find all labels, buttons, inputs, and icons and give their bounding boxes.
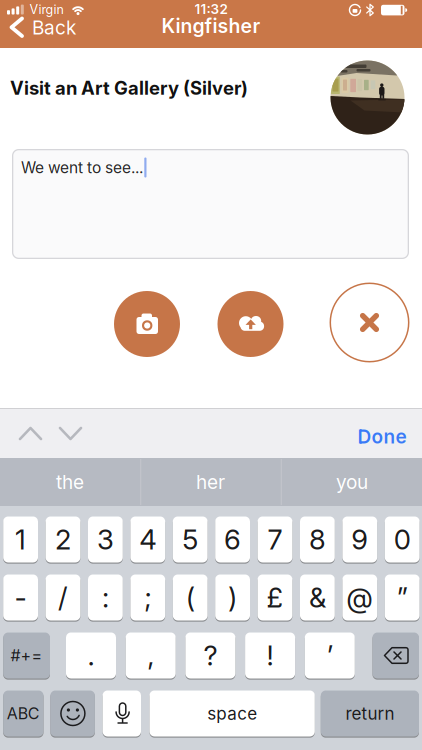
button[interactable]: 1 (3, 516, 38, 562)
button[interactable]: 4 (130, 516, 165, 562)
staticText: 9 (351, 523, 368, 556)
staticText: ABC (7, 704, 40, 723)
button[interactable]: Done (347, 418, 417, 454)
staticText: Kingfisher (161, 14, 260, 38)
button[interactable]: Upload (217, 291, 283, 357)
button[interactable]: , (126, 632, 176, 678)
staticText: 8 (309, 523, 326, 556)
staticText: 4 (139, 523, 156, 556)
button[interactable]: ; (130, 574, 165, 620)
staticText: return (345, 703, 394, 724)
staticText: 7 (267, 523, 282, 556)
staticText: , (147, 639, 154, 672)
button[interactable]: . (66, 632, 116, 678)
button[interactable]: ” (385, 574, 420, 620)
button[interactable]: space (149, 690, 315, 736)
button[interactable]: ABC (3, 690, 43, 736)
staticText: 2 (55, 523, 71, 556)
button[interactable]: Cancel (329, 282, 409, 362)
button[interactable]: Story text (12, 149, 409, 259)
staticText: & (309, 581, 326, 614)
staticText: the (56, 470, 84, 493)
button[interactable]: 3 (88, 516, 123, 562)
button[interactable]: #+= (3, 632, 50, 678)
staticText: space (207, 703, 257, 724)
button[interactable]: @ (342, 574, 377, 620)
staticText: . (87, 639, 94, 672)
button[interactable]: £ (258, 574, 292, 620)
button[interactable]: 5 (173, 516, 208, 562)
button[interactable]: Dictate (103, 690, 141, 736)
button[interactable]: ! (245, 632, 295, 678)
button[interactable]: the (1, 459, 139, 505)
staticText: Visit an Art Gallery (Silver) (10, 77, 248, 99)
staticText: ! (267, 639, 274, 672)
staticText: 0 (394, 523, 411, 556)
staticText: / (58, 581, 68, 614)
staticText: 3 (97, 523, 114, 556)
staticText: ; (144, 581, 151, 614)
staticText: ” (397, 581, 408, 614)
button[interactable]: ( (173, 574, 208, 620)
button[interactable]: 2 (46, 516, 80, 562)
staticText: her (196, 470, 225, 493)
staticText: - (15, 581, 27, 614)
staticText: @ (346, 581, 373, 614)
staticText: #+= (11, 646, 43, 665)
staticText: 5 (182, 523, 198, 556)
staticText: ) (228, 581, 237, 614)
button[interactable]: Emoji (50, 690, 95, 736)
staticText: £ (266, 581, 283, 614)
staticText: 6 (224, 523, 241, 556)
button[interactable]: Take Photo (114, 291, 180, 357)
button[interactable]: 8 (300, 516, 335, 562)
staticText: ( (186, 581, 195, 614)
button[interactable]: return (321, 690, 419, 736)
staticText: ’ (327, 639, 333, 672)
button[interactable]: Back (0, 8, 90, 46)
button[interactable]: & (300, 574, 335, 620)
staticText: you (336, 470, 368, 493)
button[interactable]: Next field (55, 417, 85, 449)
button[interactable]: 7 (258, 516, 292, 562)
staticText: Virgin (29, 2, 63, 17)
button[interactable]: ) (215, 574, 250, 620)
button[interactable]: Previous field (15, 417, 45, 449)
staticText: We went to see... (21, 158, 143, 177)
staticText: : (102, 581, 109, 614)
button[interactable]: 6 (215, 516, 250, 562)
button[interactable]: her (141, 459, 279, 505)
staticText: 1 (15, 523, 26, 556)
button[interactable]: 9 (342, 516, 377, 562)
staticText: Done (357, 425, 406, 448)
button[interactable]: - (3, 574, 38, 620)
button[interactable]: / (46, 574, 80, 620)
staticText: 11:32 (194, 1, 227, 17)
staticText: Back (32, 16, 76, 39)
button[interactable]: Delete (372, 632, 419, 678)
button[interactable]: : (88, 574, 123, 620)
staticText: ? (203, 639, 217, 672)
button[interactable]: you (283, 459, 421, 505)
button[interactable]: ? (185, 632, 235, 678)
button[interactable]: 0 (385, 516, 420, 562)
button[interactable]: ’ (305, 632, 355, 678)
